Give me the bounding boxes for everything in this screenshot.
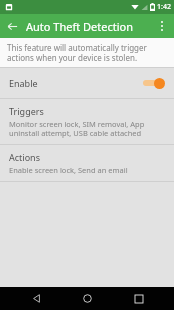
button[interactable]: Home — [71, 287, 103, 310]
staticText: 1:42 — [157, 2, 171, 12]
button[interactable]: More options — [150, 14, 174, 38]
staticText: Actions — [9, 151, 40, 163]
staticText: Enable — [9, 77, 38, 89]
staticText: Enable screen lock, Send an email — [9, 165, 128, 175]
button[interactable]: Triggers — [0, 99, 174, 144]
button[interactable]: Recent apps — [123, 287, 155, 310]
button[interactable]: Enable — [0, 68, 174, 98]
staticText: Auto Theft Detection — [26, 19, 133, 34]
staticText: Triggers — [9, 105, 44, 117]
staticText: Monitor screen lock, SIM removal, App un… — [9, 119, 165, 138]
button[interactable]: Back — [20, 287, 52, 310]
staticText: This feature will automatically trigger … — [7, 42, 167, 63]
button[interactable]: Actions — [0, 145, 174, 181]
button[interactable]: Back — [0, 14, 24, 38]
